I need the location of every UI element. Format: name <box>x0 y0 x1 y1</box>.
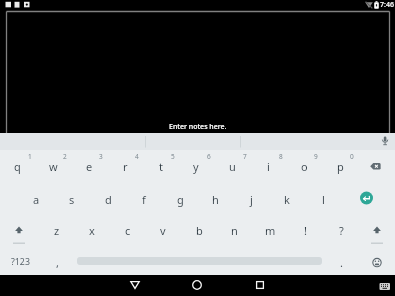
staticText: 1 <box>28 152 32 161</box>
staticText: 8 <box>279 152 283 161</box>
staticText: s <box>69 192 75 207</box>
staticText: a <box>33 192 40 207</box>
staticText: Enter notes here. <box>169 122 227 132</box>
staticText: ? <box>339 223 344 238</box>
staticText: g <box>177 192 184 207</box>
staticText: u <box>229 159 236 174</box>
button[interactable]: ? <box>324 218 358 242</box>
staticText: h <box>212 192 219 207</box>
button[interactable]: Enter notes here. <box>98 120 298 134</box>
staticText: m <box>265 223 276 238</box>
staticText: o <box>301 159 308 174</box>
button[interactable]: b <box>182 218 216 242</box>
button[interactable]: w <box>36 154 70 178</box>
button[interactable]: m <box>253 218 287 242</box>
button[interactable]: ?123 <box>3 250 37 274</box>
button[interactable]: ! <box>288 218 322 242</box>
button[interactable]: x <box>75 218 109 242</box>
staticText: z <box>54 223 60 238</box>
button[interactable]: n <box>217 218 251 242</box>
button[interactable]: i <box>251 154 285 178</box>
staticText: t <box>159 159 163 174</box>
staticText: j <box>250 192 253 207</box>
staticText: 3 <box>99 152 103 161</box>
staticText: 7 <box>243 152 247 161</box>
staticText: k <box>284 192 290 207</box>
button[interactable]: s <box>55 187 89 211</box>
staticText: 0 <box>350 152 354 161</box>
staticText: v <box>160 223 166 238</box>
button[interactable]: u <box>215 154 249 178</box>
button[interactable]: k <box>270 187 304 211</box>
staticText: q <box>14 159 21 174</box>
staticText: 9 <box>314 152 318 161</box>
staticText: n <box>231 223 238 238</box>
button[interactable]: p <box>323 154 357 178</box>
button[interactable]: d <box>91 187 125 211</box>
button[interactable]: z <box>40 218 74 242</box>
staticText: y <box>193 159 199 174</box>
button[interactable]: v <box>146 218 180 242</box>
staticText: l <box>322 192 325 207</box>
button[interactable]: q <box>0 154 34 178</box>
staticText: r <box>123 159 128 174</box>
button[interactable]: a <box>19 187 53 211</box>
button[interactable]: , <box>40 250 74 274</box>
staticText: 2 <box>63 152 67 161</box>
staticText: 4 <box>135 152 139 161</box>
button[interactable]: e <box>72 154 106 178</box>
button[interactable]: r <box>108 154 142 178</box>
button[interactable]: l <box>306 187 340 211</box>
staticText: p <box>337 159 344 174</box>
staticText: 5 <box>171 152 175 161</box>
staticText: . <box>340 255 343 270</box>
button[interactable]: o <box>287 154 321 178</box>
staticText: ! <box>304 223 307 238</box>
button[interactable]: c <box>111 218 145 242</box>
staticText: i <box>267 159 270 174</box>
button[interactable]: t <box>144 154 178 178</box>
button[interactable]: j <box>234 187 268 211</box>
staticText: x <box>89 223 95 238</box>
button[interactable]: y <box>179 154 213 178</box>
staticText: c <box>125 223 131 238</box>
staticText: ?123 <box>11 256 30 268</box>
button[interactable]: f <box>127 187 161 211</box>
button[interactable]: h <box>198 187 232 211</box>
staticText: d <box>105 192 112 207</box>
staticText: b <box>196 223 203 238</box>
button[interactable]: g <box>163 187 197 211</box>
staticText: 7:46 <box>380 0 394 10</box>
staticText: e <box>86 159 93 174</box>
staticText: f <box>142 192 146 207</box>
button[interactable]: . <box>324 250 358 274</box>
staticText: w <box>49 159 58 174</box>
staticText: 6 <box>207 152 211 161</box>
staticText: , <box>56 255 59 270</box>
